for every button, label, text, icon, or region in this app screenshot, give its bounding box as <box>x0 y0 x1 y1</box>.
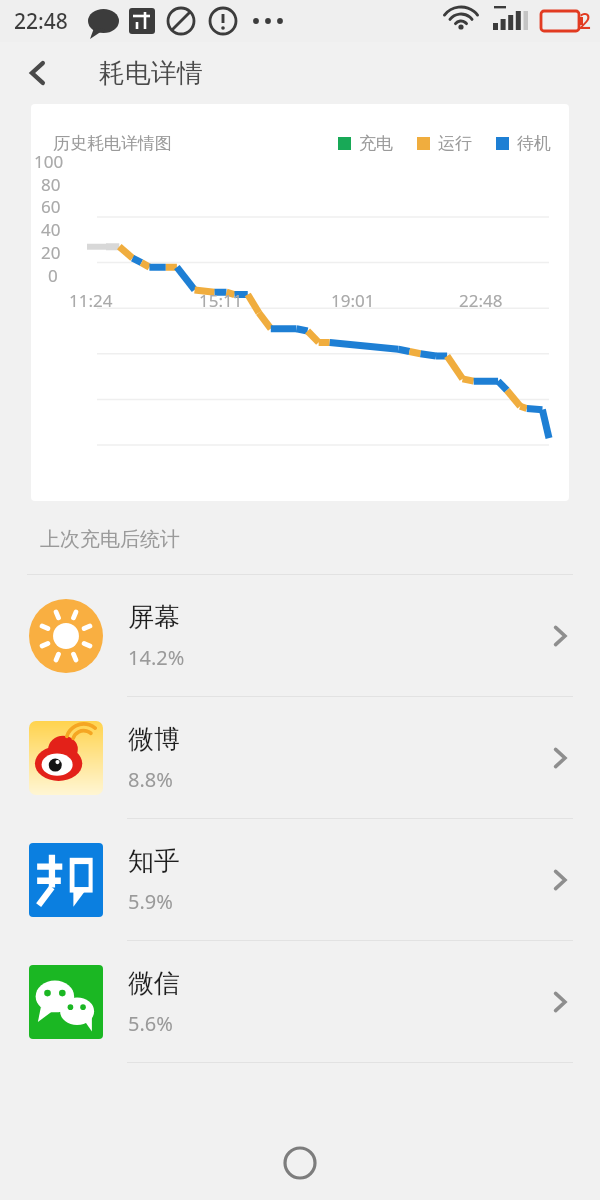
button[interactable]: 微信 <box>0 941 600 1063</box>
button[interactable]: 主页 <box>271 1134 329 1192</box>
button[interactable]: 返回 <box>0 42 76 104</box>
staticText: 40 <box>41 218 61 241</box>
staticText: 充电 <box>359 133 393 154</box>
staticText: 0 <box>48 264 58 287</box>
staticText: 80 <box>41 173 61 196</box>
staticText: 15:11 <box>199 289 243 312</box>
staticText: 19:01 <box>331 289 375 312</box>
staticText: 上次充电后统计 <box>40 527 180 552</box>
staticText: 微博 <box>128 723 180 756</box>
staticText: 100 <box>34 150 64 173</box>
staticText: 22:48 <box>14 7 68 36</box>
button[interactable]: 知乎 <box>0 819 600 941</box>
staticText: 待机 <box>517 133 551 154</box>
staticText: 2 <box>579 7 592 36</box>
staticText: 5.6% <box>128 1010 173 1037</box>
staticText: 运行 <box>438 133 472 154</box>
staticText: 屏幕 <box>128 601 180 634</box>
staticText: 8.8% <box>128 766 173 793</box>
staticText: 14.2% <box>128 644 185 671</box>
staticText: 22:48 <box>459 289 503 312</box>
staticText: 11:24 <box>69 289 113 312</box>
staticText: 5.9% <box>128 888 173 915</box>
button[interactable]: 屏幕 <box>0 575 600 697</box>
staticText: 60 <box>41 195 61 218</box>
staticText: 20 <box>41 241 61 264</box>
staticText: 微信 <box>128 967 180 1000</box>
staticText: 耗电详情 <box>99 57 203 90</box>
staticText: 历史耗电详情图 <box>53 133 172 154</box>
staticText: 知乎 <box>128 845 180 878</box>
button[interactable]: 微博 <box>0 697 600 819</box>
